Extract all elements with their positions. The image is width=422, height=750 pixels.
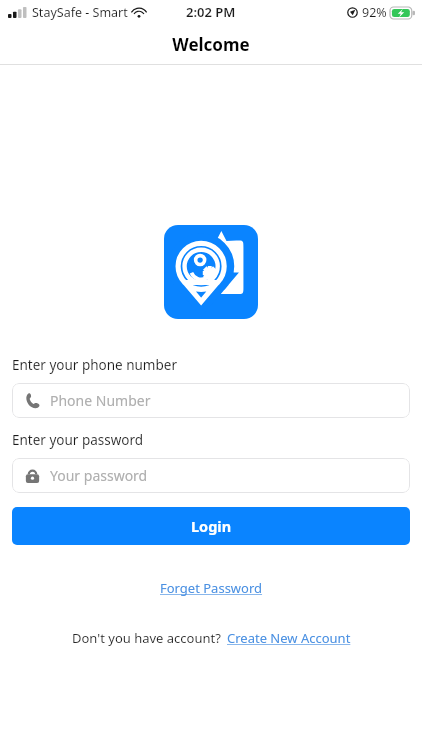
staticText: Enter your password (12, 431, 144, 449)
staticText: Forget Password (160, 579, 263, 597)
staticText: Don't you have account? (72, 629, 221, 647)
staticText: Login (191, 516, 232, 536)
button[interactable]: Create New Account (227, 626, 351, 650)
button[interactable]: Your password (12, 458, 410, 493)
staticText: StaySafe - Smart (32, 4, 128, 21)
staticText: Welcome (172, 33, 250, 56)
button[interactable]: Forget Password (152, 576, 271, 600)
staticText: 92% (362, 4, 387, 21)
staticText: Your password (50, 466, 148, 485)
staticText: 2:02 PM (186, 3, 236, 21)
staticText: Phone Number (50, 391, 151, 410)
staticText: Create New Account (227, 629, 351, 647)
staticText: Enter your phone number (12, 356, 177, 374)
button[interactable]: Login (12, 507, 410, 545)
button[interactable]: Phone Number (12, 383, 410, 418)
